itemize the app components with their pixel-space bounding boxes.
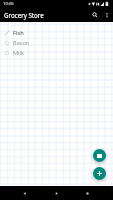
staticText: Fish xyxy=(13,29,24,37)
button[interactable]: Home xyxy=(46,186,67,200)
button[interactable]: Recent apps xyxy=(77,186,98,200)
staticText: Milk xyxy=(13,49,24,57)
button[interactable]: Back xyxy=(14,186,35,200)
button[interactable]: Bacon xyxy=(0,38,113,48)
staticText: Bacon xyxy=(13,39,30,47)
button[interactable]: Save list xyxy=(93,149,106,162)
button[interactable]: Add item xyxy=(93,167,106,180)
staticText: Grocery Store xyxy=(4,11,44,19)
button[interactable]: Search xyxy=(89,9,101,21)
button[interactable]: Fish xyxy=(0,28,113,38)
button[interactable]: More options xyxy=(101,9,113,21)
staticText: 10:06 xyxy=(3,1,14,7)
button[interactable]: Milk xyxy=(0,48,113,58)
